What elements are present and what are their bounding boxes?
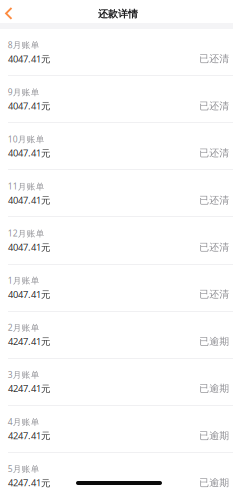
- staticText: 4047.41元: [8, 241, 50, 253]
- button[interactable]: 4月账单: [0, 406, 233, 453]
- button[interactable]: 10月账单: [0, 123, 233, 170]
- button[interactable]: 返回: [0, 0, 18, 23]
- staticText: 8月账单: [8, 39, 40, 51]
- staticText: 还款详情: [98, 8, 138, 20]
- staticText: 已还清: [199, 288, 229, 300]
- staticText: 4月账单: [8, 416, 40, 427]
- staticText: 已逾期: [199, 382, 229, 395]
- staticText: 已逾期: [199, 335, 229, 348]
- staticText: 4047.41元: [8, 288, 50, 301]
- button[interactable]: 12月账单: [0, 217, 233, 264]
- button[interactable]: 2月账单: [0, 312, 233, 359]
- staticText: 已还清: [199, 53, 229, 65]
- button[interactable]: 1月账单: [0, 264, 233, 312]
- staticText: 4047.41元: [8, 99, 50, 112]
- button[interactable]: 8月账单: [0, 29, 233, 76]
- staticText: 9月账单: [8, 86, 40, 98]
- staticText: 4247.41元: [8, 335, 50, 348]
- staticText: 4047.41元: [8, 147, 50, 159]
- staticText: 11月账单: [8, 180, 45, 192]
- staticText: 12月账单: [8, 227, 45, 239]
- staticText: 1月账单: [8, 275, 40, 286]
- staticText: 已还清: [199, 194, 229, 206]
- button[interactable]: 9月账单: [0, 76, 233, 123]
- staticText: 已逾期: [199, 476, 229, 488]
- staticText: 4247.41元: [8, 429, 50, 442]
- staticText: 已逾期: [199, 429, 229, 442]
- button[interactable]: 11月账单: [0, 170, 233, 217]
- staticText: 10月账单: [8, 133, 45, 145]
- button[interactable]: 5月账单: [0, 453, 233, 488]
- staticText: 已还清: [199, 100, 229, 112]
- staticText: 已还清: [199, 241, 229, 253]
- staticText: 已还清: [199, 147, 229, 159]
- staticText: 5月账单: [8, 463, 40, 475]
- staticText: 3月账单: [8, 369, 40, 380]
- staticText: 4247.41元: [8, 382, 50, 395]
- staticText: 4047.41元: [8, 52, 50, 65]
- staticText: 4247.41元: [8, 476, 50, 488]
- staticText: 4047.41元: [8, 194, 50, 206]
- staticText: 2月账单: [8, 322, 40, 333]
- button[interactable]: 3月账单: [0, 359, 233, 406]
